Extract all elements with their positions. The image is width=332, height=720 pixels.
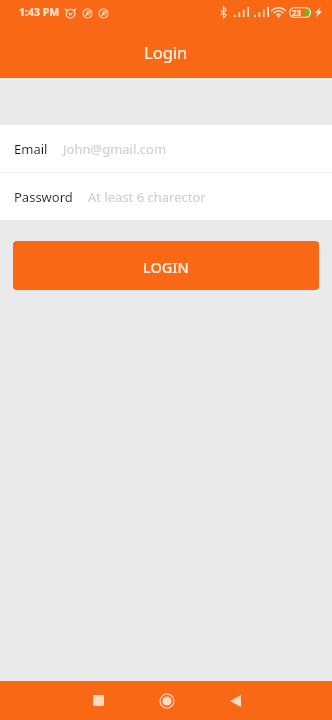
staticText: Login: [144, 41, 188, 63]
button[interactable]: Password: [0, 173, 332, 220]
button[interactable]: Email: [0, 125, 332, 172]
staticText: John@gmail.com: [63, 140, 167, 158]
button[interactable]: Recents: [70, 681, 126, 720]
staticText: 23: [292, 7, 302, 18]
button[interactable]: LOGIN: [13, 241, 319, 290]
staticText: 1:43 PM: [19, 5, 60, 19]
staticText: Email: [14, 140, 48, 158]
staticText: Password: [14, 188, 73, 206]
button[interactable]: Home: [139, 681, 195, 720]
staticText: At least 6 charector: [88, 188, 206, 206]
staticText: LOGIN: [143, 257, 189, 277]
button[interactable]: Back: [207, 681, 263, 720]
